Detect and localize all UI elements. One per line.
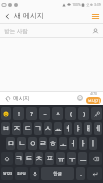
button[interactable]: ㅍ	[45, 152, 54, 165]
button[interactable]: shift	[1, 152, 13, 165]
staticText: 한글	[53, 171, 62, 177]
button[interactable]: .	[76, 167, 85, 180]
staticText: 4/70	[90, 92, 97, 96]
staticText: 받는 사람	[4, 27, 28, 35]
button[interactable]: ?	[26, 107, 37, 120]
button[interactable]: enter	[87, 167, 102, 180]
staticText: ㅎ	[49, 139, 57, 148]
button[interactable]: Back	[0, 9, 14, 23]
button[interactable]: back	[89, 152, 102, 165]
button[interactable]: ㅅ	[44, 122, 52, 135]
button[interactable]: ㅣ	[89, 137, 97, 150]
staticText: ㅂ	[2, 124, 10, 133]
button[interactable]: ^	[52, 107, 63, 120]
staticText: ㅜ	[68, 154, 76, 163]
staticText: ㅑ	[74, 124, 82, 133]
button[interactable]: 한/영	[15, 167, 28, 180]
button[interactable]: ㅌ	[25, 152, 33, 165]
staticText: )	[83, 110, 85, 117]
staticText: ㄹ	[39, 139, 47, 148]
button[interactable]: ㄹ	[39, 137, 47, 150]
button[interactable]: ㅗ	[59, 137, 67, 150]
button[interactable]: Attach	[2, 93, 13, 104]
button[interactable]: ㅇ	[28, 137, 37, 150]
staticText: ㄴ	[18, 139, 26, 148]
staticText: ㅓ	[69, 139, 77, 148]
button[interactable]: ㅈ	[12, 122, 21, 135]
staticText: .	[80, 170, 82, 177]
button[interactable]: ㅐ	[84, 122, 92, 135]
button[interactable]: mic	[30, 167, 39, 180]
staticText: 오후 3:39	[86, 2, 101, 7]
staticText: 100%	[72, 2, 81, 7]
staticText: ㅔ	[94, 124, 102, 133]
staticText: !	[18, 110, 20, 117]
staticText: ㄷ	[24, 124, 32, 133]
button[interactable]: ㅔ	[94, 122, 102, 135]
staticText: ㅈ	[13, 124, 21, 133]
button[interactable]: ㅛ	[54, 122, 62, 135]
staticText: ㅗ	[59, 139, 67, 148]
staticText: ㅐ	[84, 124, 92, 133]
staticText: ㅕ	[64, 124, 72, 133]
staticText: ㅏ	[79, 139, 87, 148]
button[interactable]: ㅑ	[74, 122, 82, 135]
button[interactable]: ㅠ	[56, 152, 65, 165]
staticText: 한/영	[17, 171, 26, 176]
staticText: ㅇ	[29, 139, 37, 148]
button[interactable]: Menu	[88, 9, 103, 23]
staticText: ㄱ	[34, 124, 42, 133]
staticText: 보내기	[88, 98, 100, 103]
button[interactable]: ㅜ	[67, 152, 76, 165]
staticText: ㅡ	[79, 154, 87, 163]
staticText: ㅛ	[54, 124, 62, 133]
staticText: ㅠ	[57, 154, 65, 163]
button[interactable]: ㅂ	[1, 122, 10, 135]
button[interactable]: ㄱ	[34, 122, 42, 135]
button[interactable]: ㅏ	[79, 137, 87, 150]
button[interactable]: (	[65, 107, 76, 120]
staticText: ?	[30, 110, 33, 117]
button[interactable]: ㅓ	[69, 137, 77, 150]
button[interactable]: !#123	[1, 167, 13, 180]
button[interactable]: ㅁ	[6, 137, 15, 150]
staticText: ㅅ	[44, 124, 52, 133]
button[interactable]: 보내기	[86, 97, 101, 104]
button[interactable]: ㅡ	[78, 152, 87, 165]
staticText: ~	[43, 110, 47, 117]
button[interactable]: ㅕ	[64, 122, 72, 135]
staticText: (	[70, 110, 72, 117]
button[interactable]: ㄷ	[23, 122, 32, 135]
button[interactable]: Contacts	[89, 25, 101, 37]
staticText: !#123	[3, 171, 12, 176]
staticText: 새 메시지	[14, 11, 44, 21]
staticText: ㅊ	[35, 154, 43, 163]
staticText: ㅣ	[89, 139, 97, 148]
button[interactable]: 한글	[41, 167, 74, 180]
button[interactable]: ㄴ	[17, 137, 26, 150]
button[interactable]: !	[13, 107, 24, 120]
button[interactable]: ㅎ	[49, 137, 57, 150]
button[interactable]: emoji	[1, 107, 11, 120]
button[interactable]: Emoji	[75, 93, 85, 103]
staticText: ㅍ	[46, 154, 54, 163]
staticText: ^	[56, 110, 60, 117]
staticText: ㅋ	[15, 154, 23, 163]
staticText: ㅁ	[7, 139, 15, 148]
button[interactable]: ㅋ	[15, 152, 23, 165]
staticText: ㅌ	[25, 154, 33, 163]
button[interactable]: )	[78, 107, 89, 120]
staticText: 메시지	[13, 95, 30, 102]
button[interactable]: key	[91, 107, 102, 120]
button[interactable]: ㅊ	[35, 152, 43, 165]
button[interactable]: ~	[39, 107, 50, 120]
